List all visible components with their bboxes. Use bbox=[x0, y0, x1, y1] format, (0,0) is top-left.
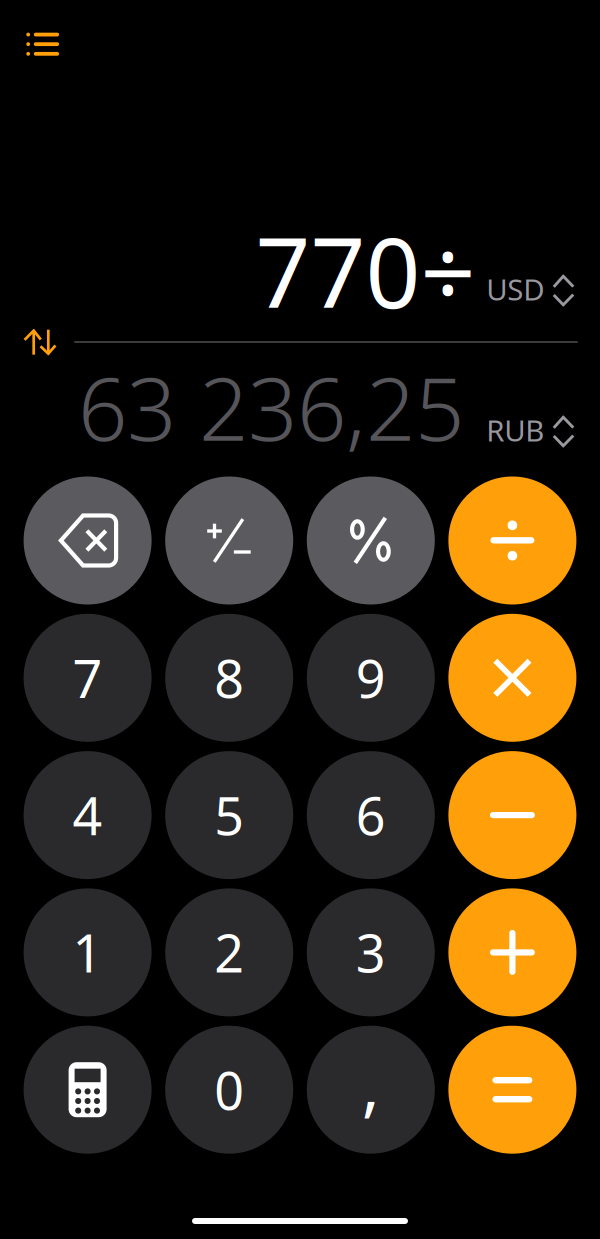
button[interactable]: 4 bbox=[24, 751, 152, 879]
staticText: 4 bbox=[73, 781, 103, 850]
button[interactable]: Add bbox=[448, 888, 576, 1016]
button[interactable]: 9 bbox=[307, 614, 435, 742]
button[interactable]: Toggle sign bbox=[165, 476, 293, 604]
button[interactable]: 2 bbox=[165, 888, 293, 1016]
button[interactable]: Swap currencies bbox=[11, 316, 69, 369]
staticText: RUB bbox=[486, 410, 544, 449]
button[interactable]: 6 bbox=[307, 751, 435, 879]
button[interactable]: Percent bbox=[307, 476, 435, 604]
button[interactable]: Subtract bbox=[448, 751, 576, 879]
button[interactable]: 0 bbox=[165, 1026, 293, 1154]
button[interactable]: 5 bbox=[165, 751, 293, 879]
staticText: 6 bbox=[356, 781, 386, 850]
button[interactable]: Delete bbox=[24, 476, 152, 604]
button[interactable]: , bbox=[307, 1026, 435, 1154]
staticText: USD bbox=[486, 269, 544, 308]
button[interactable]: Multiply bbox=[448, 614, 576, 742]
staticText: , bbox=[362, 1039, 380, 1128]
staticText: 3 bbox=[356, 918, 386, 987]
staticText: 0 bbox=[214, 1055, 244, 1124]
button[interactable]: 7 bbox=[24, 614, 152, 742]
staticText: 8 bbox=[214, 643, 244, 712]
button[interactable]: Equals bbox=[448, 1026, 576, 1154]
button[interactable]: Divide bbox=[448, 476, 576, 604]
button[interactable]: 1 bbox=[24, 888, 152, 1016]
button[interactable]: Currency USD bbox=[476, 259, 584, 318]
staticText: 9 bbox=[356, 643, 386, 712]
staticText: 7 bbox=[73, 643, 103, 712]
staticText: 5 bbox=[214, 781, 244, 850]
staticText: 2 bbox=[214, 918, 244, 987]
button[interactable]: Calculator bbox=[24, 1026, 152, 1154]
button[interactable]: 8 bbox=[165, 614, 293, 742]
staticText: 63 236,25 bbox=[78, 349, 464, 465]
button[interactable]: Currency list bbox=[10, 17, 75, 72]
staticText: 1 bbox=[73, 918, 103, 987]
button[interactable]: Currency RUB bbox=[476, 400, 584, 459]
button[interactable]: 3 bbox=[307, 888, 435, 1016]
staticText: 770÷ bbox=[255, 207, 475, 335]
